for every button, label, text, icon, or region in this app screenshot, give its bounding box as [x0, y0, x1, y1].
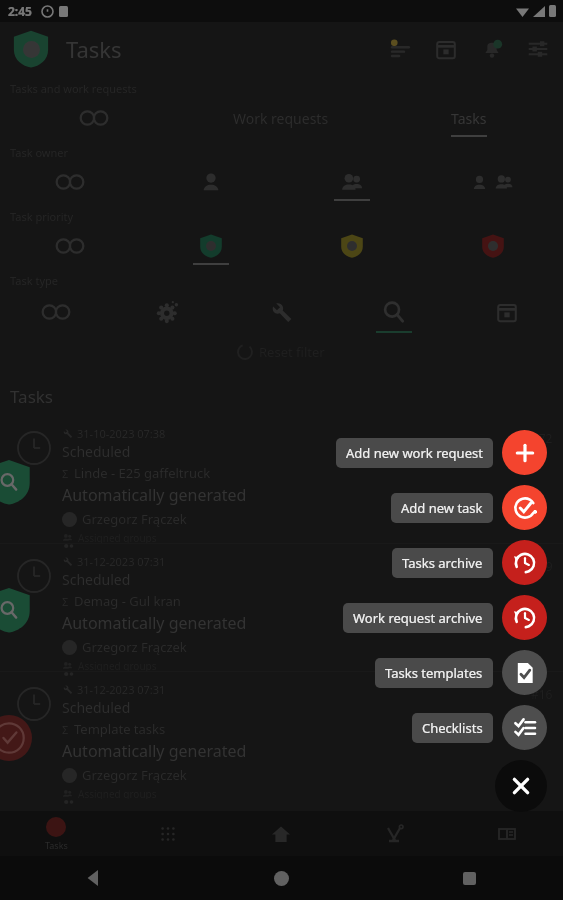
staticText: 2:45	[8, 3, 32, 19]
button[interactable]	[0, 289, 112, 335]
button[interactable]: Checklists	[412, 705, 547, 750]
button[interactable]: Tasks	[375, 97, 563, 139]
staticText: Demag - Gul kran	[74, 592, 181, 610]
staticText: 31-12-2023 07:31	[77, 554, 166, 569]
button[interactable]: Add new task	[391, 485, 547, 530]
button[interactable]	[422, 161, 563, 203]
staticText: 31-12-2023 07:31	[77, 682, 166, 697]
staticText: Task priority	[10, 209, 74, 224]
staticText: Tasks	[45, 839, 68, 851]
button[interactable]: Settings	[523, 34, 553, 64]
button[interactable]	[450, 289, 563, 335]
staticText: Tasks templates	[385, 664, 483, 682]
staticText: Automatically generated	[62, 612, 247, 634]
staticText: Σ	[62, 594, 69, 609]
button[interactable]: 31-10-2023 07:38	[0, 416, 563, 543]
button[interactable]	[224, 289, 337, 335]
other: Tasks templates	[502, 650, 547, 695]
button[interactable]: App logo	[10, 28, 52, 70]
staticText: #16	[531, 686, 553, 702]
button[interactable]	[140, 225, 281, 267]
staticText: Template tasks	[74, 720, 166, 738]
button[interactable]: Tasks templates	[375, 650, 547, 695]
staticText: Tasks archive	[402, 554, 483, 572]
button[interactable]: Add new work request	[336, 430, 547, 475]
button[interactable]	[0, 97, 187, 139]
staticText: Linde - E25 gaffeltruck	[74, 464, 211, 482]
staticText: Task owner	[10, 145, 69, 160]
staticText: Σ	[62, 722, 69, 737]
staticText: Automatically generated	[62, 740, 247, 762]
staticText: Tasks	[10, 385, 53, 408]
other: Checklists	[502, 705, 547, 750]
button[interactable]: Tasks	[0, 811, 112, 856]
staticText: Grzegorz Frączek	[82, 766, 187, 784]
button[interactable]	[0, 225, 140, 267]
button[interactable]: 31-12-2023 07:31	[0, 544, 563, 671]
other: Work request archive	[502, 595, 547, 640]
staticText: Σ	[62, 466, 69, 481]
staticText: Add new work request	[346, 444, 483, 462]
button[interactable]: Docs	[450, 811, 563, 856]
staticText: Scheduled	[62, 698, 131, 717]
button[interactable]	[281, 225, 422, 267]
button[interactable]	[337, 289, 450, 335]
other: Add new work request	[502, 430, 547, 475]
button[interactable]	[140, 161, 281, 203]
staticText: Work requests	[233, 109, 329, 128]
staticText: Add new task	[401, 499, 483, 517]
staticText: Task type	[10, 273, 58, 288]
button[interactable]	[422, 225, 563, 267]
button[interactable]: Work requests	[187, 97, 375, 139]
staticText: Scheduled	[62, 442, 131, 461]
staticText: #9	[538, 558, 553, 574]
staticText: Automatically generated	[62, 484, 247, 506]
button[interactable]	[281, 161, 422, 203]
staticText: #72	[531, 430, 553, 446]
staticText: Grzegorz Frączek	[82, 638, 187, 656]
staticText: Tasks	[451, 109, 487, 128]
button[interactable]: Filter	[385, 34, 415, 64]
button[interactable]: Notifications	[477, 34, 507, 64]
other: Add new task	[502, 485, 547, 530]
button[interactable]	[0, 161, 140, 203]
button[interactable]	[112, 289, 224, 335]
button[interactable]: Tasks archive	[392, 540, 547, 585]
staticText: Grzegorz Frączek	[82, 510, 187, 528]
staticText: Tasks and work requests	[10, 81, 137, 96]
other: Tasks archive	[502, 540, 547, 585]
button[interactable]: Close menu	[495, 760, 547, 812]
staticText: Work request archive	[353, 609, 483, 627]
staticText: Scheduled	[62, 570, 131, 589]
staticText: Tasks	[66, 34, 122, 64]
button[interactable]: 31-12-2023 07:31	[0, 672, 563, 799]
button[interactable]: Calendar	[431, 34, 461, 64]
button[interactable]: Home	[224, 811, 337, 856]
button[interactable]: Work request archive	[343, 595, 547, 640]
staticText: 31-10-2023 07:38	[77, 426, 166, 441]
staticText: Checklists	[422, 719, 483, 737]
